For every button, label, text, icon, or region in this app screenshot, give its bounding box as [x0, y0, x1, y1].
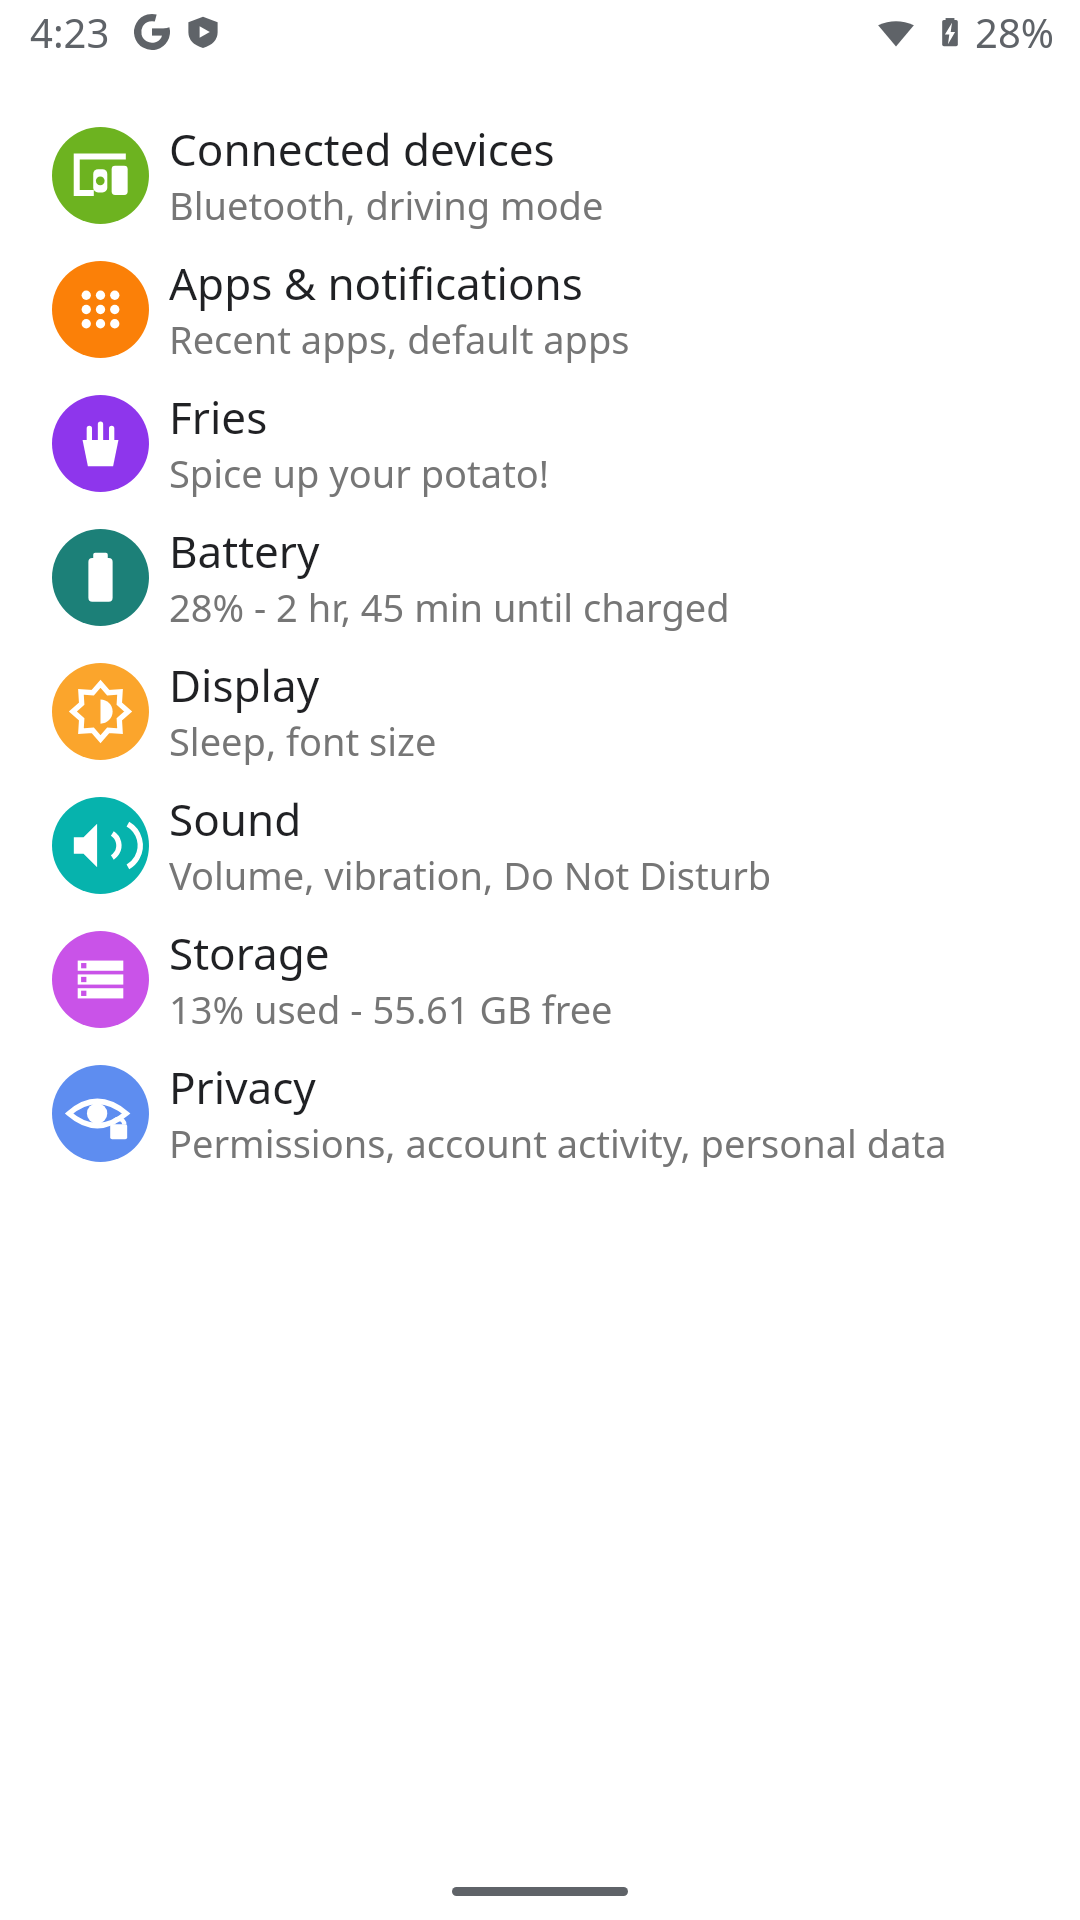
- staticText: Display: [169, 655, 320, 715]
- staticText: Sound: [169, 789, 302, 849]
- staticText: Battery: [169, 521, 320, 581]
- staticText: Bluetooth, driving mode: [169, 179, 604, 231]
- button[interactable]: Storage: [0, 912, 1080, 1046]
- other: Play Protect: [186, 15, 220, 49]
- other: Battery charging: [933, 15, 967, 49]
- button[interactable]: Display: [0, 644, 1080, 778]
- button[interactable]: Sound: [0, 778, 1080, 912]
- staticText: Fries: [169, 387, 268, 447]
- staticText: Connected devices: [169, 119, 555, 179]
- button[interactable]: Battery: [0, 510, 1080, 644]
- staticText: Permissions, account activity, personal …: [169, 1117, 947, 1169]
- staticText: 13% used - 55.61 GB free: [169, 983, 613, 1035]
- staticText: 28%: [975, 5, 1054, 59]
- staticText: 28% - 2 hr, 45 min until charged: [169, 581, 730, 633]
- staticText: Sleep, font size: [169, 715, 437, 767]
- staticText: Spice up your potato!: [169, 447, 550, 499]
- staticText: Recent apps, default apps: [169, 313, 630, 365]
- staticText: Apps & notifications: [169, 253, 583, 313]
- other: Wi-Fi: [877, 13, 915, 51]
- button[interactable]: Connected devices: [0, 108, 1080, 242]
- staticText: 4:23: [30, 5, 110, 59]
- staticText: Privacy: [169, 1057, 316, 1117]
- button[interactable]: Apps & notifications: [0, 242, 1080, 376]
- staticText: Storage: [169, 923, 330, 983]
- staticText: Volume, vibration, Do Not Disturb: [169, 849, 772, 901]
- button[interactable]: Privacy: [0, 1046, 1080, 1180]
- button[interactable]: Fries: [0, 376, 1080, 510]
- other: Google: [134, 14, 170, 50]
